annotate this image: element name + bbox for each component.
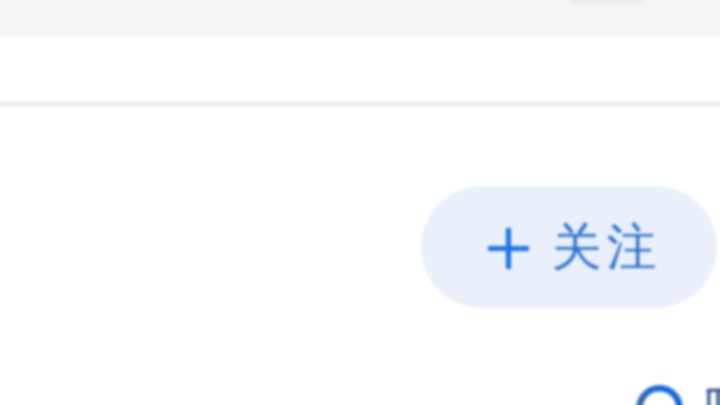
staticText: 关注 <box>549 216 659 279</box>
button[interactable]: 关注 <box>421 186 717 308</box>
other: Loading <box>636 385 684 405</box>
